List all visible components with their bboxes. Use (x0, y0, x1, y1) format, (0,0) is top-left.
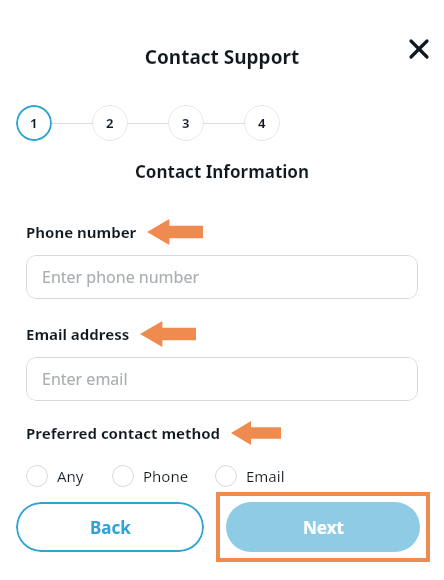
staticText: Contact Information (26, 160, 418, 183)
staticText: Email (246, 466, 285, 486)
button[interactable]: Any (26, 465, 84, 487)
staticText: 2 (106, 114, 114, 132)
staticText: 4 (258, 114, 266, 132)
staticText: Phone (143, 466, 189, 486)
button[interactable]: Phone (112, 465, 189, 487)
button[interactable]: 3 (168, 105, 204, 141)
button[interactable]: Next (226, 502, 420, 552)
staticText: 3 (182, 114, 190, 132)
staticText: Email address (26, 324, 130, 344)
button[interactable]: 2 (92, 105, 128, 141)
staticText: 1 (30, 114, 38, 132)
button[interactable]: Enter phone number (26, 255, 418, 299)
button[interactable]: 4 (244, 105, 280, 141)
staticText: Contact Support (0, 44, 444, 70)
staticText: Any (57, 466, 84, 486)
button[interactable]: Close (400, 30, 438, 68)
staticText: Preferred contact method (26, 423, 221, 443)
button[interactable]: 1 (16, 105, 52, 141)
button[interactable]: Enter email (26, 357, 418, 401)
button[interactable]: Email (215, 465, 285, 487)
button[interactable]: Back (16, 502, 204, 552)
staticText: Enter email (42, 368, 128, 390)
staticText: Next (303, 516, 344, 539)
staticText: Enter phone number (42, 266, 200, 288)
staticText: Back (90, 516, 131, 539)
staticText: Phone number (26, 222, 137, 242)
